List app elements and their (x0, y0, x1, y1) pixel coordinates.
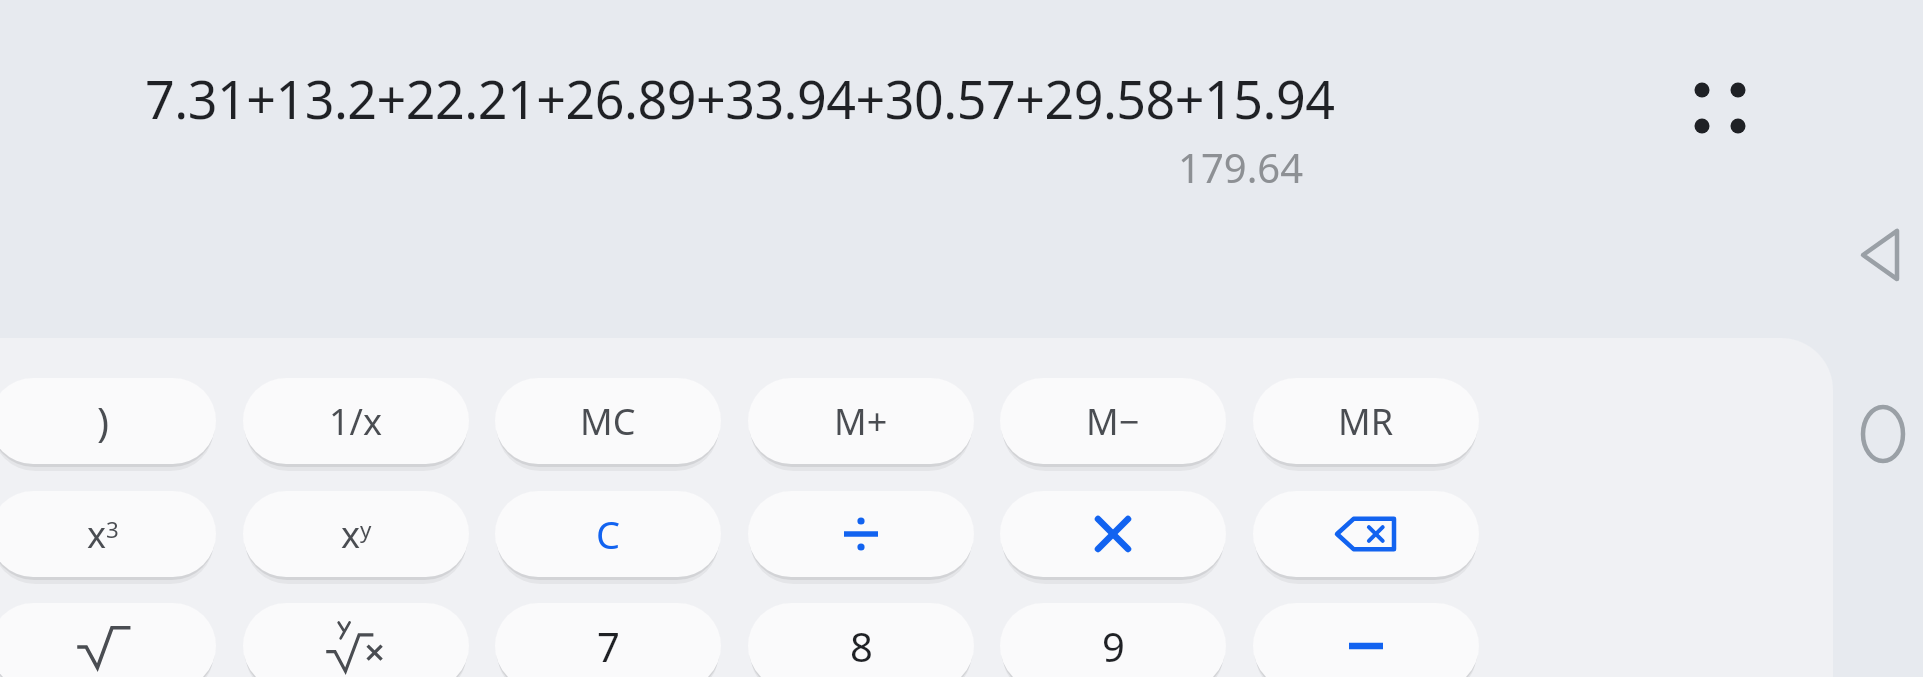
button[interactable]: M+ (748, 378, 974, 464)
staticText: 7 (597, 619, 620, 673)
button[interactable]: xy (243, 491, 469, 577)
staticText: MC (580, 397, 636, 446)
button[interactable]: 7 (495, 603, 721, 677)
staticText: 8 (850, 619, 873, 673)
button[interactable]: M− (1000, 378, 1226, 464)
staticText: 7.31+13.2+22.21+26.89+33.94+30.57+29.58+… (145, 63, 1335, 134)
button[interactable]: C (495, 491, 721, 577)
button[interactable]: Backspace (1253, 491, 1479, 577)
button[interactable]: Back (1858, 227, 1908, 283)
button[interactable]: Square root (0, 603, 216, 677)
button[interactable]: More options (1676, 63, 1758, 145)
staticText: 1/x (329, 397, 383, 446)
button[interactable]: 1/x (243, 378, 469, 464)
staticText: C (596, 508, 621, 560)
button[interactable]: Multiply (1000, 491, 1226, 577)
button[interactable]: 9 (1000, 603, 1226, 677)
button[interactable]: ) (0, 378, 216, 464)
button[interactable]: MC (495, 378, 721, 464)
staticText: 9 (1102, 619, 1125, 673)
staticText: 179.64 (1178, 140, 1304, 194)
staticText: xy (341, 510, 372, 559)
button[interactable]: x3 (0, 491, 216, 577)
staticText: MR (1338, 397, 1394, 446)
staticText: M− (1086, 397, 1140, 446)
button[interactable]: Divide (748, 491, 974, 577)
button[interactable]: Home (1857, 404, 1909, 464)
button[interactable]: 8 (748, 603, 974, 677)
staticText: ) (97, 394, 109, 448)
button[interactable]: Minus (1253, 603, 1479, 677)
button[interactable]: Y-th root (243, 603, 469, 677)
button[interactable]: MR (1253, 378, 1479, 464)
staticText: x3 (87, 510, 119, 559)
staticText: M+ (834, 397, 888, 446)
